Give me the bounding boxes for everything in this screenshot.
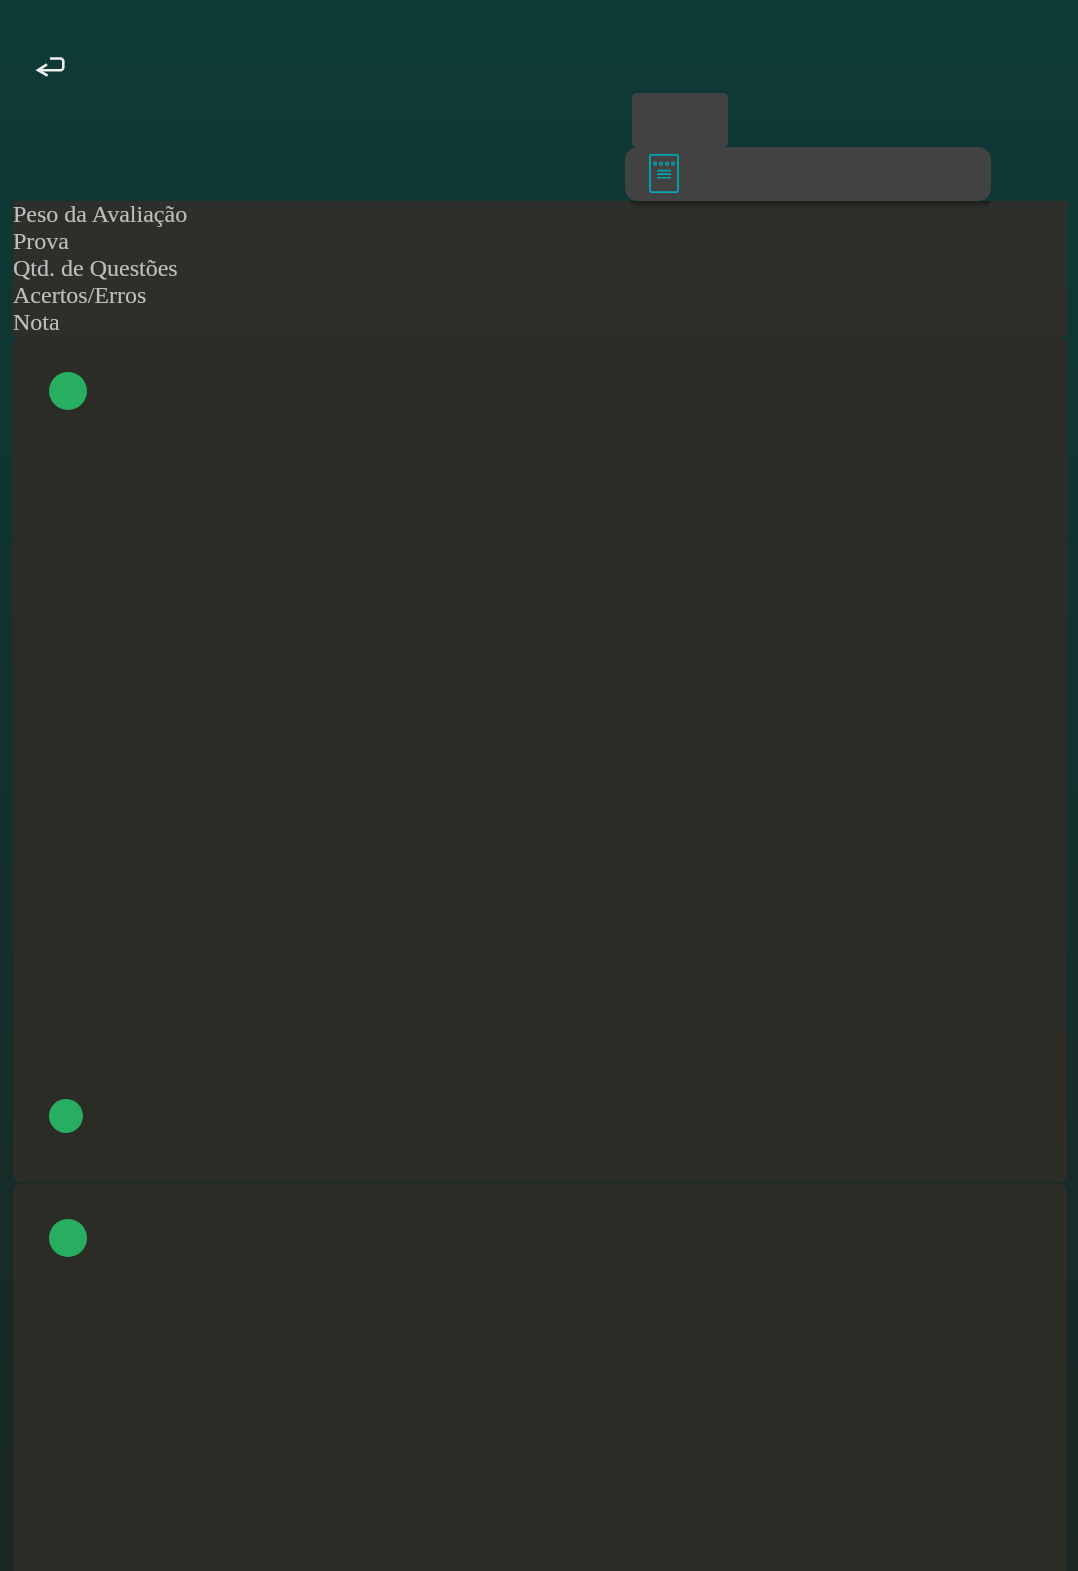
staticText: Nota <box>13 309 60 336</box>
button[interactable] <box>13 1184 1067 1571</box>
staticText: Peso da Avaliação <box>13 201 188 228</box>
staticText: Acertos/Erros <box>13 282 147 309</box>
button[interactable] <box>13 336 1067 1183</box>
staticText: Qtd. de Questões <box>13 255 178 282</box>
button[interactable]: Notes <box>625 147 991 201</box>
button[interactable]: Back <box>25 42 73 90</box>
staticText: Prova <box>13 228 69 255</box>
